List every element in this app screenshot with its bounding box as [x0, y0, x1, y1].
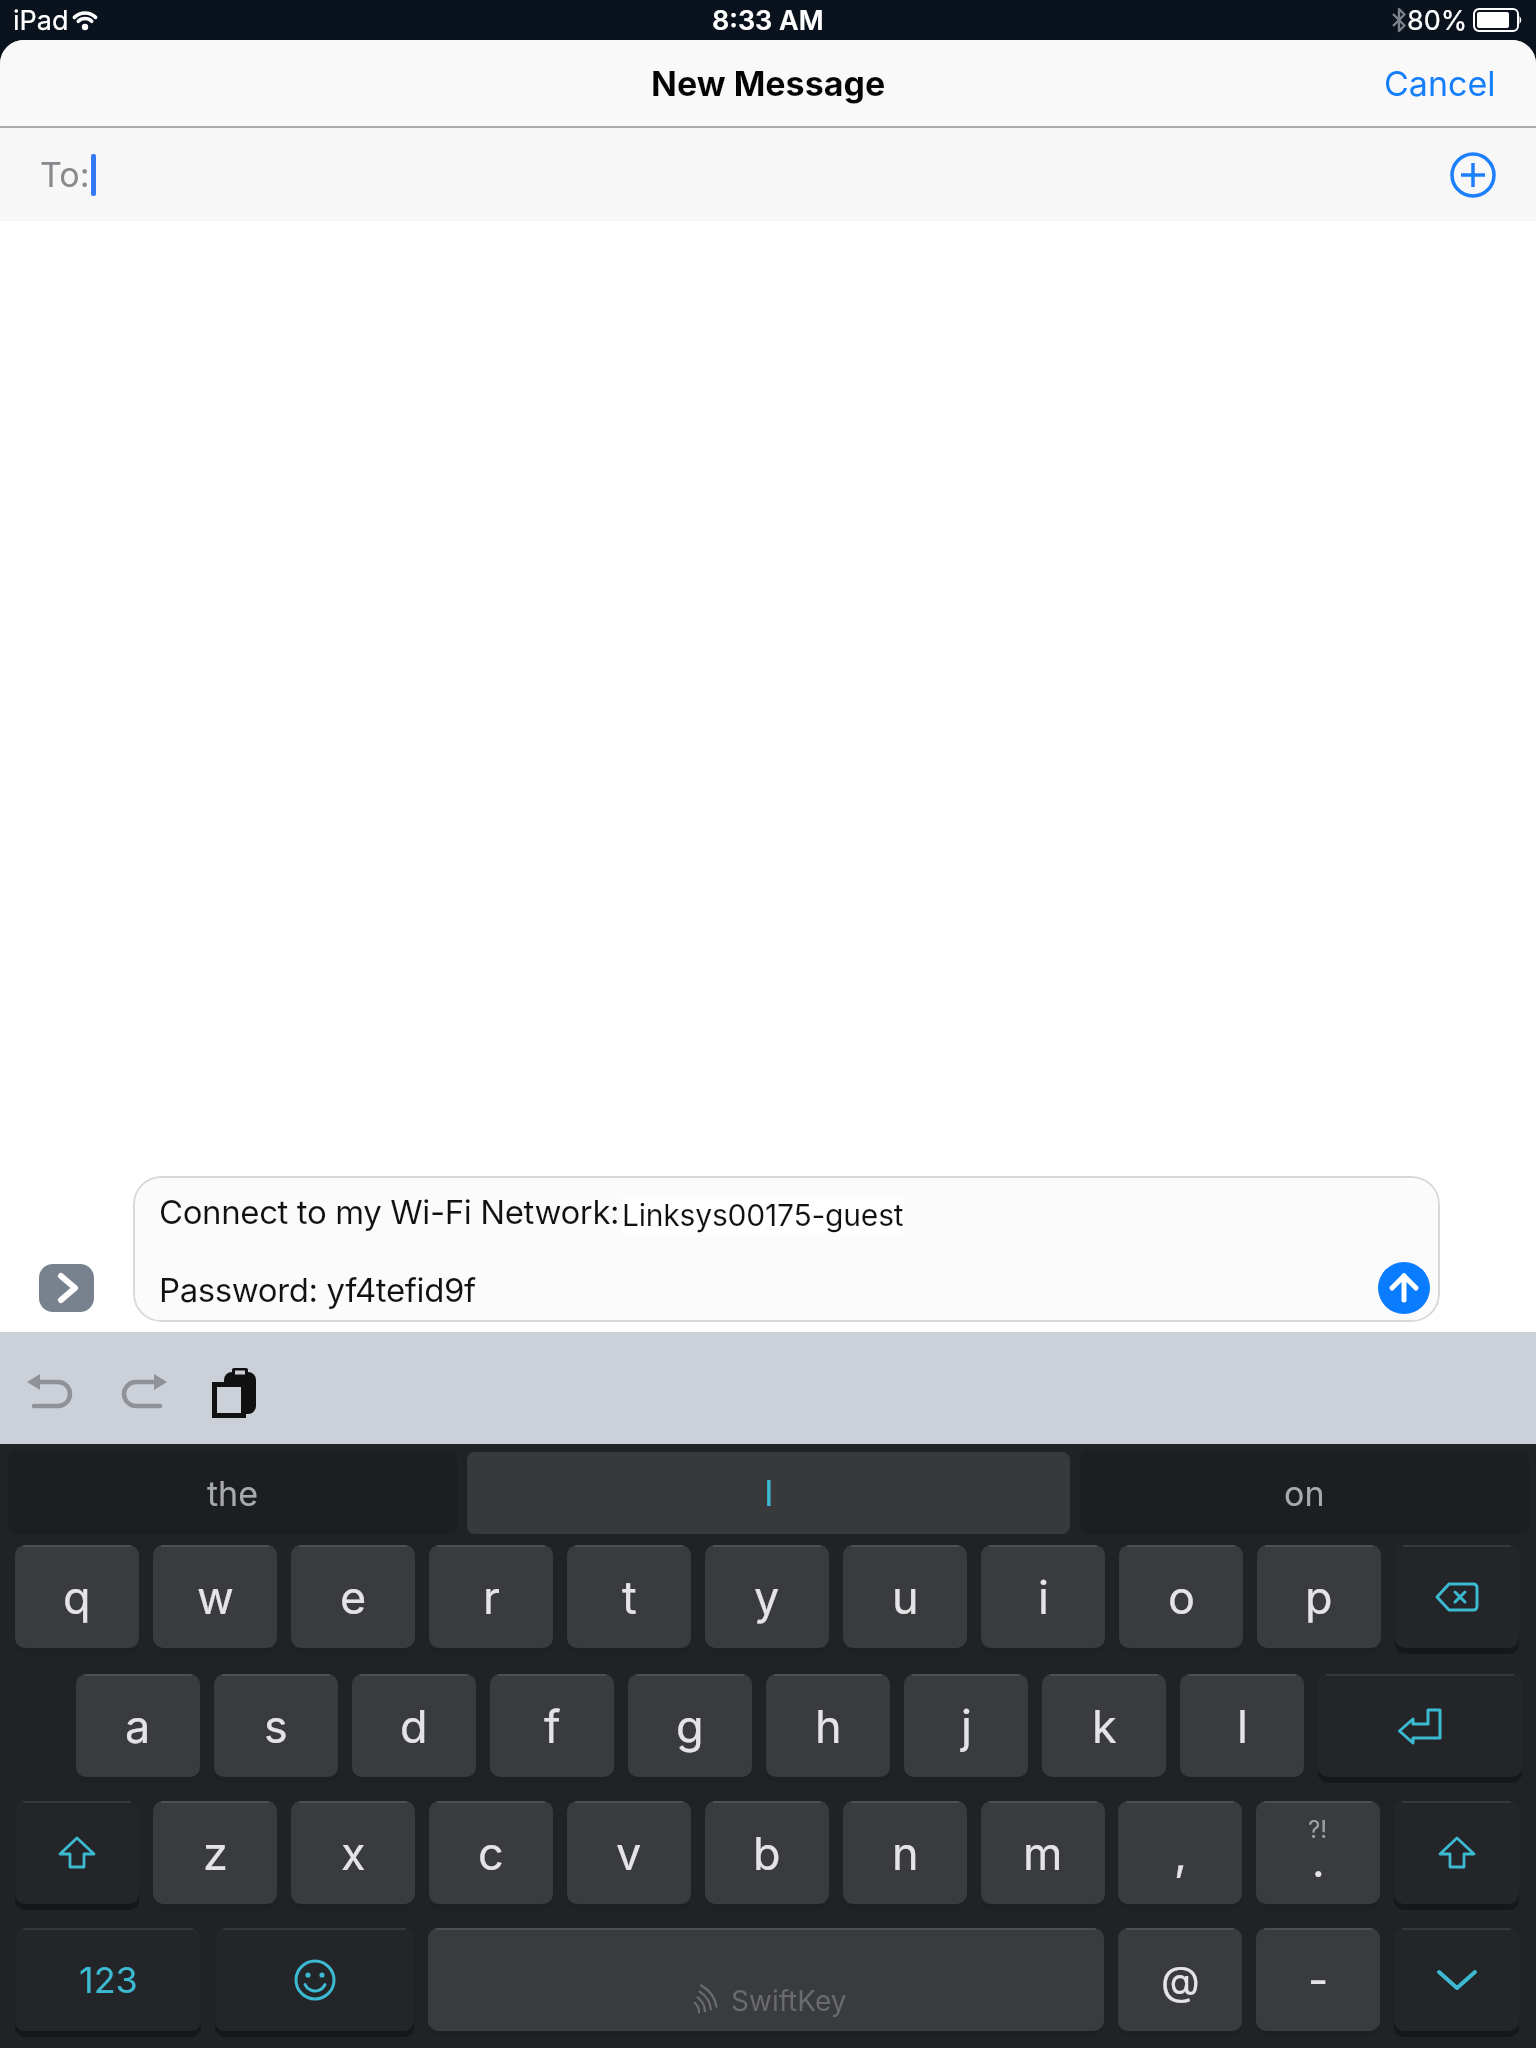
- button[interactable]: p: [1257, 1545, 1381, 1654]
- button[interactable]: [26, 1370, 80, 1424]
- button[interactable]: [212, 1368, 264, 1420]
- staticText: w: [197, 1570, 234, 1624]
- button[interactable]: l: [1180, 1674, 1304, 1783]
- staticText: h: [815, 1699, 842, 1753]
- staticText: on: [1284, 1473, 1325, 1514]
- staticText: y: [754, 1570, 780, 1624]
- button[interactable]: q: [15, 1545, 139, 1654]
- button[interactable]: z: [153, 1801, 277, 1910]
- button[interactable]: @: [1118, 1928, 1242, 2037]
- staticText: z: [203, 1826, 228, 1880]
- staticText: e: [340, 1570, 367, 1624]
- button[interactable]: w: [153, 1545, 277, 1654]
- staticText: 8:33 AM: [712, 4, 824, 37]
- staticText: m: [1023, 1826, 1063, 1880]
- button[interactable]: on: [1080, 1452, 1529, 1534]
- staticText: New Message: [651, 63, 886, 104]
- button[interactable]: o: [1119, 1545, 1243, 1654]
- button[interactable]: n: [843, 1801, 967, 1910]
- staticText: 80%: [1407, 4, 1468, 37]
- button[interactable]: [1318, 1674, 1522, 1783]
- button[interactable]: ?!: [1256, 1801, 1380, 1910]
- button[interactable]: c: [429, 1801, 553, 1910]
- staticText: u: [892, 1570, 919, 1624]
- staticText: @: [1161, 1956, 1200, 2004]
- button[interactable]: [114, 1370, 168, 1424]
- staticText: .: [1312, 1834, 1325, 1887]
- staticText: s: [264, 1699, 288, 1753]
- button[interactable]: f: [490, 1674, 614, 1783]
- button[interactable]: k: [1042, 1674, 1166, 1783]
- button[interactable]: [1394, 1928, 1519, 2037]
- staticText: I: [764, 1471, 774, 1515]
- button[interactable]: -: [1256, 1928, 1380, 2037]
- staticText: j: [961, 1699, 972, 1753]
- button[interactable]: u: [843, 1545, 967, 1654]
- button[interactable]: ,: [1118, 1801, 1242, 1910]
- button[interactable]: [1395, 1545, 1519, 1654]
- button[interactable]: t: [567, 1545, 691, 1654]
- staticText: 123: [79, 1958, 138, 2002]
- staticText: o: [1168, 1570, 1195, 1624]
- button[interactable]: SwiftKey: [428, 1928, 1104, 2037]
- staticText: t: [622, 1570, 637, 1624]
- staticText: x: [341, 1826, 366, 1880]
- button[interactable]: d: [352, 1674, 476, 1783]
- staticText: q: [63, 1570, 91, 1624]
- staticText: To:: [40, 154, 100, 195]
- staticText: v: [616, 1826, 642, 1880]
- button[interactable]: the: [8, 1452, 457, 1534]
- staticText: SwiftKey: [731, 1984, 847, 2018]
- button[interactable]: [39, 1264, 94, 1312]
- button[interactable]: Cancel: [1384, 63, 1496, 104]
- staticText: b: [753, 1826, 781, 1880]
- staticText: the: [207, 1473, 259, 1514]
- button[interactable]: g: [628, 1674, 752, 1783]
- staticText: -: [1308, 1953, 1329, 2006]
- button[interactable]: a: [76, 1674, 200, 1783]
- button[interactable]: x: [291, 1801, 415, 1910]
- staticText: Cancel: [1384, 63, 1496, 104]
- button[interactable]: 123: [15, 1928, 201, 2037]
- staticText: p: [1305, 1570, 1333, 1624]
- staticText: f: [544, 1699, 561, 1753]
- staticText: l: [1237, 1699, 1248, 1753]
- button[interactable]: I: [467, 1452, 1070, 1534]
- staticText: iPad: [13, 4, 69, 37]
- staticText: ?!: [1308, 1815, 1328, 1844]
- staticText: Connect to my Wi-Fi Network:: [159, 1192, 620, 1232]
- button[interactable]: y: [705, 1545, 829, 1654]
- staticText: ,: [1174, 1826, 1187, 1880]
- button[interactable]: b: [705, 1801, 829, 1910]
- staticText: a: [125, 1699, 151, 1753]
- button[interactable]: [1394, 1801, 1519, 1910]
- staticText: d: [400, 1699, 428, 1753]
- button[interactable]: [15, 1801, 139, 1910]
- button[interactable]: j: [904, 1674, 1028, 1783]
- button[interactable]: e: [291, 1545, 415, 1654]
- button[interactable]: r: [429, 1545, 553, 1654]
- button[interactable]: m: [981, 1801, 1105, 1910]
- staticText: k: [1092, 1699, 1117, 1753]
- button[interactable]: [1450, 152, 1496, 198]
- staticText: Password: yf4tefid9f: [159, 1270, 476, 1310]
- staticText: Linksys00175-guest: [622, 1197, 904, 1233]
- button[interactable]: h: [766, 1674, 890, 1783]
- staticText: n: [892, 1826, 919, 1880]
- staticText: i: [1038, 1570, 1049, 1624]
- button[interactable]: [215, 1928, 414, 2037]
- staticText: r: [483, 1570, 500, 1624]
- button[interactable]: i: [981, 1545, 1105, 1654]
- button[interactable]: s: [214, 1674, 338, 1783]
- staticText: c: [478, 1826, 504, 1880]
- button[interactable]: v: [567, 1801, 691, 1910]
- staticText: g: [676, 1699, 704, 1753]
- button[interactable]: [1378, 1262, 1430, 1314]
